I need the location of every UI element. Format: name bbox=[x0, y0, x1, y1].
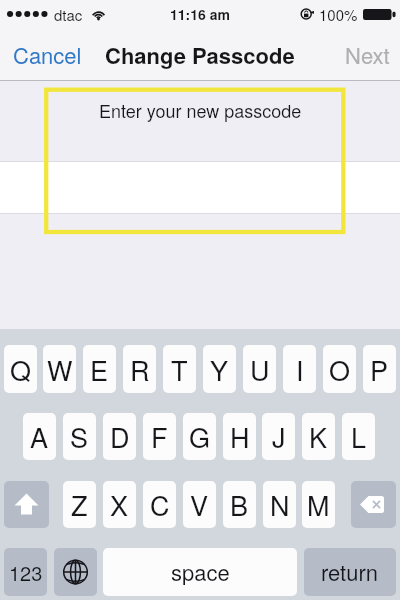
button[interactable]: C bbox=[143, 481, 176, 528]
button[interactable]: Q bbox=[4, 345, 37, 393]
button[interactable]: A bbox=[23, 413, 56, 460]
staticText: Y bbox=[210, 350, 229, 389]
staticText: 100% bbox=[319, 4, 358, 25]
button[interactable]: E bbox=[83, 345, 116, 393]
button[interactable]: Next bbox=[337, 31, 398, 79]
staticText: V bbox=[190, 485, 209, 524]
button[interactable]: X bbox=[103, 481, 136, 528]
staticText: Next bbox=[345, 39, 390, 71]
staticText: A bbox=[30, 417, 49, 456]
staticText: U bbox=[250, 350, 270, 389]
button[interactable]: Shift bbox=[4, 481, 49, 528]
button[interactable]: Cancel bbox=[5, 31, 90, 79]
button[interactable]: G bbox=[183, 413, 216, 460]
staticText: H bbox=[230, 417, 250, 456]
staticText: E bbox=[90, 350, 109, 389]
button[interactable]: O bbox=[323, 345, 356, 393]
staticText: return bbox=[321, 556, 379, 588]
staticText: L bbox=[351, 417, 367, 456]
button[interactable]: K bbox=[302, 413, 335, 460]
staticText: K bbox=[309, 417, 328, 456]
button[interactable]: R bbox=[123, 345, 156, 393]
staticText: G bbox=[189, 417, 211, 456]
button[interactable]: S bbox=[63, 413, 96, 460]
staticText: I bbox=[296, 350, 304, 389]
button[interactable]: D bbox=[103, 413, 136, 460]
button[interactable]: U bbox=[243, 345, 276, 393]
staticText: dtac bbox=[54, 4, 83, 25]
button[interactable]: F bbox=[143, 413, 176, 460]
staticText: P bbox=[370, 350, 389, 389]
button[interactable]: H bbox=[223, 413, 256, 460]
button[interactable]: I bbox=[283, 345, 316, 393]
button[interactable]: Backspace bbox=[351, 481, 396, 528]
staticText: Cancel bbox=[13, 39, 82, 71]
staticText: space bbox=[171, 556, 230, 588]
staticText: D bbox=[110, 417, 130, 456]
staticText: Z bbox=[71, 485, 88, 524]
button[interactable]: Z bbox=[63, 481, 96, 528]
button[interactable]: P bbox=[363, 345, 396, 393]
button[interactable]: J bbox=[262, 413, 295, 460]
button[interactable]: space bbox=[103, 548, 297, 596]
staticText: S bbox=[70, 417, 89, 456]
button[interactable]: L bbox=[342, 413, 375, 460]
staticText: Change Passcode bbox=[105, 39, 295, 71]
button[interactable]: T bbox=[163, 345, 196, 393]
staticText: X bbox=[110, 485, 129, 524]
staticText: N bbox=[270, 485, 290, 524]
staticText: O bbox=[329, 350, 351, 389]
button[interactable]: W bbox=[43, 345, 76, 393]
button[interactable]: Y bbox=[203, 345, 236, 393]
staticText: 11:16 am bbox=[170, 4, 230, 24]
button[interactable]: M bbox=[302, 481, 335, 528]
staticText: 123 bbox=[9, 558, 43, 587]
staticText: B bbox=[230, 485, 249, 524]
staticText: W bbox=[47, 350, 73, 389]
staticText: C bbox=[150, 485, 170, 524]
button[interactable]: return bbox=[304, 548, 396, 596]
button[interactable]: 123 bbox=[4, 548, 47, 596]
button[interactable]: N bbox=[263, 481, 296, 528]
staticText: T bbox=[171, 350, 188, 389]
staticText: R bbox=[130, 350, 150, 389]
staticText: J bbox=[272, 417, 286, 456]
button[interactable]: V bbox=[183, 481, 216, 528]
button[interactable]: B bbox=[223, 481, 256, 528]
staticText: Enter your new passcode bbox=[99, 97, 302, 123]
staticText: M bbox=[307, 485, 330, 524]
button[interactable] bbox=[0, 162, 400, 213]
button[interactable]: Change keyboard bbox=[54, 548, 97, 596]
staticText: F bbox=[151, 417, 168, 456]
staticText: Q bbox=[10, 350, 32, 389]
